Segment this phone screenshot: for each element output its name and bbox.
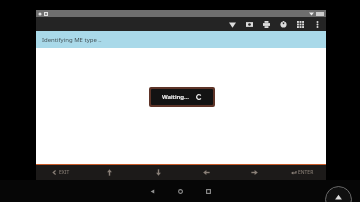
- button[interactable]: Home: [171, 180, 189, 202]
- button[interactable]: Left: [182, 165, 230, 180]
- button: Back: [0, 180, 360, 202]
- staticText: Identifying ME type ..: [42, 36, 102, 44]
- staticText: EXIT: [59, 169, 70, 176]
- button[interactable]: Apps: [295, 19, 306, 30]
- button[interactable]: Print: [261, 19, 272, 30]
- button[interactable]: Screenshot: [244, 19, 255, 30]
- button[interactable]: Power: [278, 19, 289, 30]
- button[interactable]: Back: [143, 180, 161, 202]
- button[interactable]: Exit: [36, 165, 85, 180]
- staticText: ENTER: [298, 169, 314, 176]
- button[interactable]: Recent apps: [199, 180, 217, 202]
- button[interactable]: Waiting...: [151, 89, 213, 105]
- staticText: Waiting...: [162, 93, 189, 101]
- button[interactable]: Up: [85, 165, 134, 180]
- button[interactable]: Right: [230, 165, 278, 180]
- button[interactable]: Expand handle: [325, 186, 352, 202]
- button[interactable]: Identifying ME type ..: [36, 31, 326, 48]
- button[interactable]: Network: [227, 19, 238, 30]
- button[interactable]: Enter: [278, 165, 326, 180]
- button[interactable]: More options: [312, 19, 323, 30]
- button[interactable]: Down: [134, 165, 182, 180]
